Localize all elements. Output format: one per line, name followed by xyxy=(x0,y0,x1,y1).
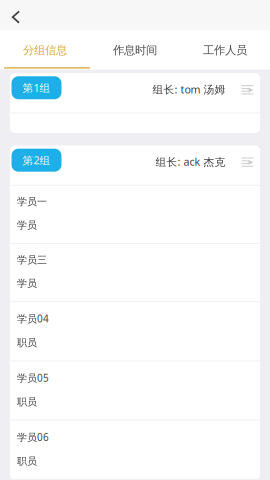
staticText: 学员三 xyxy=(17,254,47,266)
button[interactable]: 学员一 xyxy=(10,186,260,243)
staticText: 组长: tom 汤姆 xyxy=(152,82,225,96)
button[interactable]: 工作人员 xyxy=(180,30,270,67)
staticText: 第2组 xyxy=(22,153,50,167)
staticText: 职员 xyxy=(17,455,37,467)
button[interactable]: 作息时间 xyxy=(90,30,180,67)
staticText: 组长: ack 杰克 xyxy=(155,154,225,169)
staticText: 学员一 xyxy=(17,195,47,208)
staticText: 学员05 xyxy=(17,371,49,385)
staticText: 学员04 xyxy=(17,312,49,325)
button[interactable]: 学员06 xyxy=(10,421,260,479)
staticText: 学员 xyxy=(17,219,37,232)
staticText: 工作人员 xyxy=(203,43,247,57)
staticText: 分组信息 xyxy=(23,43,67,57)
button[interactable]: 分组菜单 xyxy=(238,149,256,172)
staticText: 第1组 xyxy=(22,80,50,95)
staticText: 职员 xyxy=(17,396,37,408)
button[interactable]: 学员05 xyxy=(10,361,260,420)
button[interactable]: 学员三 xyxy=(10,244,260,301)
button[interactable]: 分组菜单 xyxy=(238,76,256,99)
button[interactable]: 学员04 xyxy=(10,302,260,360)
staticText: 作息时间 xyxy=(113,43,157,57)
staticText: 职员 xyxy=(17,336,37,349)
staticText: 学员 xyxy=(17,277,37,290)
button[interactable]: 分组信息 xyxy=(0,30,90,67)
button[interactable]: 返回 xyxy=(0,0,34,30)
staticText: 学员06 xyxy=(17,430,49,444)
